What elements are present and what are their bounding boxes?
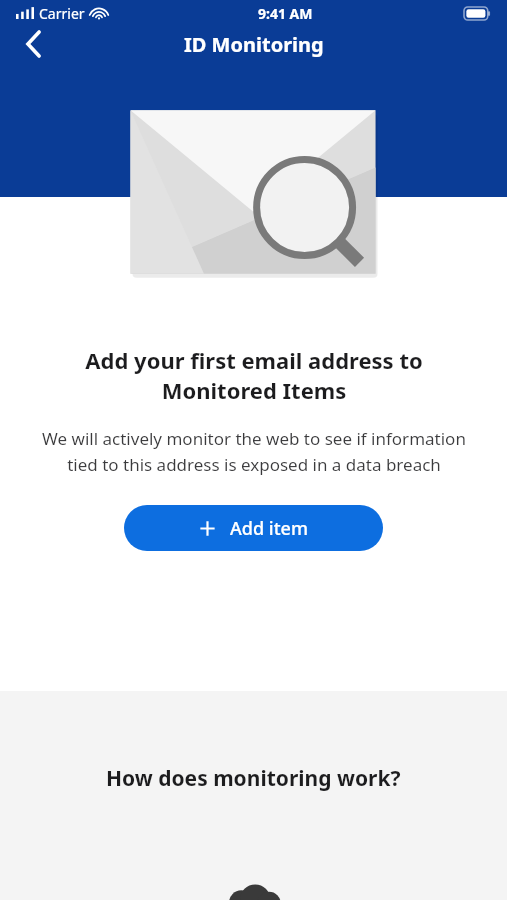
staticText: ID Monitoring	[184, 31, 324, 58]
staticText: We will actively monitor the web to see …	[29, 427, 479, 476]
staticText: Carrier	[39, 4, 85, 23]
staticText: How does monitoring work?	[106, 764, 401, 793]
staticText: 9:41 AM	[258, 4, 313, 23]
button[interactable]: Add item	[124, 505, 383, 551]
staticText: Add your first email address to Monitore…	[54, 345, 454, 405]
staticText: Add item	[230, 516, 308, 541]
button[interactable]: Back	[14, 24, 54, 64]
